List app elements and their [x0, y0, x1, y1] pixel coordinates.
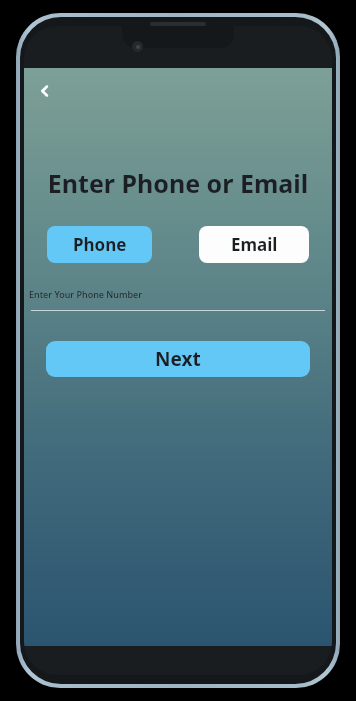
- staticText: Email: [231, 233, 278, 256]
- button[interactable]: Phone: [47, 226, 152, 263]
- button[interactable]: Back: [26, 72, 64, 110]
- staticText: Next: [155, 346, 201, 372]
- button[interactable]: Next: [46, 341, 310, 377]
- staticText: Phone: [73, 233, 127, 256]
- staticText: Enter Phone or Email: [24, 166, 332, 200]
- staticText: Enter Your Phone Number: [29, 288, 142, 300]
- button[interactable]: Email: [199, 226, 309, 263]
